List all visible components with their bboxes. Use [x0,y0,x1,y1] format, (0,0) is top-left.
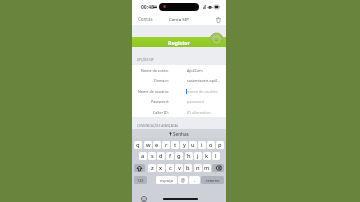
staticText: 00:48 [141,4,154,11]
staticText: s [151,152,154,160]
staticText: @ [181,177,185,183]
button[interactable]: x [157,164,165,172]
button[interactable]: a [139,152,147,160]
button[interactable]: Senhas [169,131,189,137]
staticText: o [209,141,213,149]
staticText: z [151,164,154,172]
button[interactable]: Delete account [214,15,223,24]
button[interactable]: o [207,141,215,149]
staticText: m [204,164,210,172]
staticText: Conta SIP [169,16,189,22]
staticText: i [201,141,203,149]
staticText: h [187,152,191,160]
staticText: COMUNICAÇÕES AVANÇADAS [137,124,179,128]
staticText: g [177,152,181,160]
button[interactable]: Nome de usuário: [132,86,226,96]
staticText: u [191,141,195,149]
button[interactable]: p [216,141,224,149]
staticText: Nome de usuário: [138,89,169,94]
staticText: e [155,141,159,149]
button[interactable]: b [184,164,192,172]
staticText: espaço [160,178,174,183]
button[interactable]: Emoji keyboard [141,196,147,202]
button[interactable]: Caller ID: [132,107,226,117]
button[interactable]: u [189,141,197,149]
button[interactable]: Nome da conta: [132,65,226,75]
staticText: c [169,164,172,172]
staticText: k [205,152,209,160]
staticText: ID alternativo [187,110,211,115]
staticText: OPÇÕES SIP [137,58,154,62]
button[interactable]: i [198,141,206,149]
staticText: w [146,141,151,149]
button[interactable]: Domain: [132,75,226,85]
button[interactable]: z [148,164,156,172]
button[interactable]: . [189,176,200,184]
staticText: nome do usuário [188,89,218,94]
staticText: q [136,141,140,149]
staticText: v [178,164,181,172]
button[interactable]: r [162,141,170,149]
staticText: j [197,152,199,160]
button[interactable]: t [171,141,179,149]
button[interactable]: Contas [138,13,153,25]
button[interactable]: j [194,152,202,160]
button[interactable]: m [203,164,211,172]
staticText: l [215,152,217,160]
button[interactable]: w [144,141,152,149]
button[interactable]: k [203,152,211,160]
button[interactable]: v [175,164,183,172]
button[interactable]: s [148,152,156,160]
staticText: r [165,141,168,149]
button[interactable]: Shift [134,164,145,172]
button[interactable]: Register [132,37,226,47]
staticText: Caller ID: [153,110,169,115]
staticText: Senhas [173,131,189,137]
staticText: 123 [137,178,144,183]
button[interactable]: f [166,152,174,160]
button[interactable]: espaço [156,176,177,184]
staticText: Nome da conta: [141,68,169,73]
staticText: a [141,152,145,160]
button[interactable]: q [134,141,142,149]
staticText: password [187,99,204,104]
staticText: n [196,164,200,172]
staticText: p [218,141,222,149]
staticText: Register [168,39,190,46]
staticText: . [194,177,196,183]
button[interactable]: g [175,152,183,160]
button[interactable]: c [166,164,174,172]
staticText: f [169,152,171,160]
staticText: y [183,141,186,149]
button[interactable]: l [212,152,220,160]
staticText: Password: [151,99,169,104]
button[interactable]: d [157,152,165,160]
button[interactable]: y [180,141,188,149]
button[interactable]: h [185,152,193,160]
staticText: Contas [138,16,153,22]
staticText: b [186,164,190,172]
staticText: x [159,164,163,172]
button[interactable]: At sign [178,176,188,184]
staticText: sustentaveis.api4... [187,78,220,83]
staticText: t [174,141,177,149]
staticText: retorno [206,178,220,183]
button[interactable]: e [153,141,161,149]
button[interactable]: Password: [132,96,226,106]
button[interactable]: Backspace [212,164,224,172]
staticText: Domain: [154,78,169,83]
staticText: d [159,152,163,160]
button[interactable]: 123 [134,176,147,184]
button[interactable]: retorno [201,176,224,184]
staticText: Api4Com [187,68,203,73]
button[interactable]: n [194,164,202,172]
